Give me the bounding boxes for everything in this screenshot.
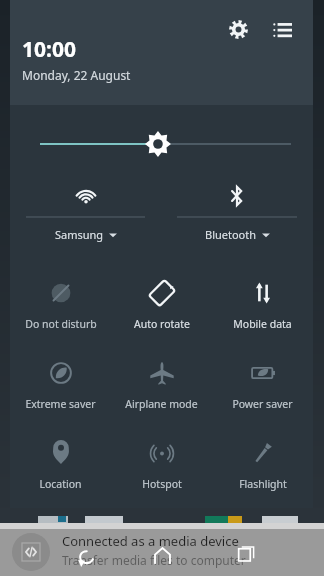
button[interactable]: Hotspot xyxy=(111,427,212,507)
staticText: Flashlight xyxy=(239,477,287,491)
button[interactable]: Power saver xyxy=(212,347,313,427)
staticText: Hotspot xyxy=(142,477,182,491)
staticText: Samsung xyxy=(55,227,104,242)
staticText: Connected as a media device xyxy=(62,532,239,550)
button[interactable]: Bluetooth xyxy=(161,175,313,261)
staticText: Bluetooth xyxy=(205,227,257,242)
staticText: Auto rotate xyxy=(134,317,190,331)
staticText: Mobile data xyxy=(233,317,292,331)
button[interactable]: Back xyxy=(66,540,106,576)
button[interactable]: Connected as a media device xyxy=(0,529,324,576)
staticText: Do not disturb xyxy=(25,317,97,331)
staticText: 10:00 xyxy=(22,35,76,64)
staticText: Airplane mode xyxy=(125,397,198,411)
button[interactable]: Location xyxy=(10,427,111,507)
staticText: Power saver xyxy=(232,397,293,411)
button[interactable]: Home xyxy=(142,537,182,573)
button[interactable]: Recent apps xyxy=(226,535,266,571)
button[interactable]: Extreme saver xyxy=(10,347,111,427)
button[interactable]: Settings xyxy=(221,12,255,46)
button[interactable]: Samsung xyxy=(10,175,161,261)
staticText: Extreme saver xyxy=(25,397,96,411)
staticText: Monday, 22 August xyxy=(22,67,131,83)
button[interactable]: Auto rotate xyxy=(111,267,212,347)
staticText: Location xyxy=(39,477,82,491)
staticText: Transfer media files to computer xyxy=(62,552,246,568)
button[interactable]: Edit quick settings xyxy=(265,12,299,46)
button[interactable]: Do not disturb xyxy=(10,267,111,347)
button[interactable]: Airplane mode xyxy=(111,347,212,427)
button[interactable]: Mobile data xyxy=(212,267,313,347)
button[interactable]: Flashlight xyxy=(212,427,313,507)
